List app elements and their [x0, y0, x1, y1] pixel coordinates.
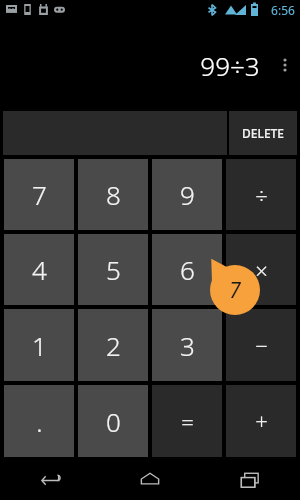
button[interactable]: More options [270, 20, 300, 110]
button[interactable]: − [226, 309, 296, 381]
staticText: 2 [106, 328, 121, 363]
staticText: ÷ [255, 180, 268, 210]
staticText: − [255, 330, 268, 360]
button[interactable]: 8 [78, 159, 148, 230]
staticText: × [255, 255, 268, 285]
button[interactable]: 7 [4, 159, 74, 230]
staticText: 5 [106, 252, 121, 287]
button[interactable]: ÷ [226, 159, 296, 230]
button[interactable]: = [152, 385, 222, 457]
staticText: 0 [106, 404, 121, 439]
button[interactable]: . [4, 385, 74, 457]
button[interactable]: DELETE [229, 111, 297, 155]
button[interactable]: 0 [78, 385, 148, 457]
staticText: 7 [229, 276, 241, 302]
staticText: 6:56 [271, 2, 295, 18]
staticText: 3 [180, 328, 195, 363]
button[interactable]: Recent apps [200, 460, 300, 500]
staticText: . [36, 404, 43, 439]
staticText: 1 [32, 328, 47, 363]
staticText: 8 [106, 177, 121, 212]
button[interactable]: 5 [78, 234, 148, 305]
staticText: 7 [32, 177, 47, 212]
button[interactable]: 2 [78, 309, 148, 381]
staticText: 4 [32, 252, 47, 287]
button[interactable]: Back [0, 460, 100, 500]
button[interactable]: Home [100, 460, 200, 500]
staticText: + [255, 406, 268, 436]
button[interactable]: 3 [152, 309, 222, 381]
button[interactable]: 1 [4, 309, 74, 381]
staticText: = [181, 406, 194, 436]
staticText: DELETE [242, 125, 284, 141]
button[interactable]: 4 [4, 234, 74, 305]
button[interactable]: × [226, 234, 296, 305]
button[interactable]: + [226, 385, 296, 457]
button[interactable]: 6 [152, 234, 222, 305]
button[interactable]: 9 [152, 159, 222, 230]
staticText: 99÷3 [200, 48, 260, 83]
staticText: 9 [180, 177, 195, 212]
staticText: 6 [180, 252, 195, 287]
